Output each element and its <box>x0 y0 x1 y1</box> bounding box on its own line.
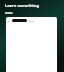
button[interactable] <box>12 19 27 22</box>
staticText: All <box>7 19 10 22</box>
staticText: More <box>28 19 35 22</box>
staticText: new. <box>5 10 14 15</box>
staticText: Learn something <box>5 3 39 8</box>
